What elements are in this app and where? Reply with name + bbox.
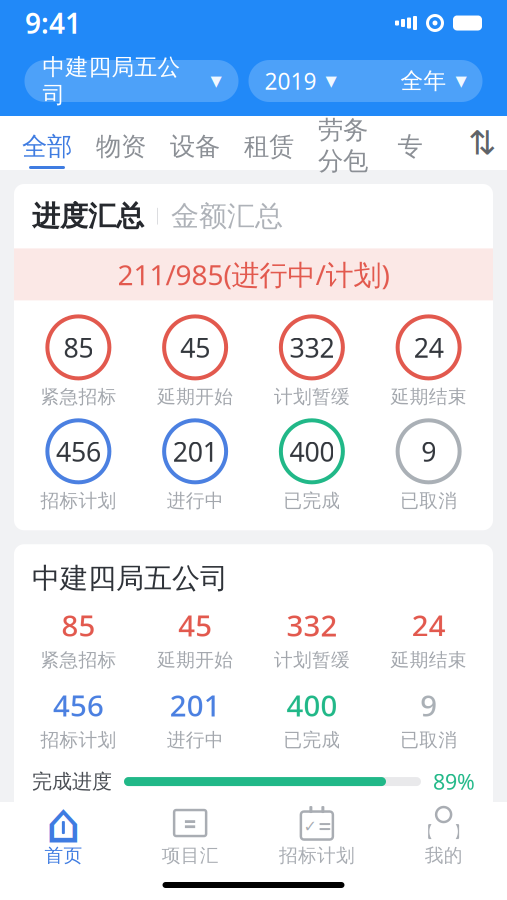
staticText: 201 bbox=[170, 685, 221, 724]
staticText: 9 bbox=[421, 434, 436, 469]
staticText: 24 bbox=[412, 606, 446, 645]
staticText: 85 bbox=[63, 330, 93, 365]
staticText: 物资 bbox=[96, 131, 146, 162]
button[interactable]: 进度汇总 bbox=[32, 184, 144, 248]
staticText: 456 bbox=[56, 434, 101, 469]
staticText: 400 bbox=[289, 434, 334, 469]
staticText: ⇅ bbox=[468, 124, 496, 162]
staticText: 我的 bbox=[425, 844, 463, 867]
staticText: ▼ bbox=[210, 73, 221, 89]
button[interactable]: ✓ bbox=[253, 802, 380, 870]
staticText: 全部 bbox=[22, 131, 72, 162]
button[interactable]: 金额汇总 bbox=[171, 184, 283, 248]
staticText: 已完成 bbox=[283, 728, 340, 751]
staticText: 进行中 bbox=[167, 728, 224, 751]
staticText: 已完成 bbox=[283, 489, 340, 512]
button[interactable]: 中建四局五公司 bbox=[14, 544, 493, 812]
button[interactable]: 我的 bbox=[380, 802, 507, 870]
staticText: 紧急招标 bbox=[40, 649, 116, 671]
button[interactable]: 2019 bbox=[248, 60, 352, 102]
staticText: 完成进度 bbox=[32, 769, 112, 794]
button[interactable]: ⌂ bbox=[0, 802, 127, 870]
staticText: 劳务分包 bbox=[318, 114, 368, 177]
staticText: 已取消 bbox=[400, 728, 457, 751]
staticText: 金额汇总 bbox=[171, 199, 283, 233]
staticText: 招标计划 bbox=[279, 844, 355, 867]
staticText: 24 bbox=[414, 330, 444, 365]
button[interactable]: 〓 bbox=[127, 802, 254, 870]
staticText: 计划暂缓 bbox=[274, 385, 350, 408]
staticText: 456 bbox=[53, 685, 104, 724]
staticText: ▼ bbox=[325, 73, 336, 89]
staticText: 〓 bbox=[183, 815, 198, 833]
staticText: ✓ bbox=[303, 817, 316, 836]
staticText: 已取消 bbox=[400, 489, 457, 512]
staticText: 201 bbox=[173, 434, 218, 469]
staticText: 设备 bbox=[170, 131, 220, 162]
staticText: 332 bbox=[286, 606, 337, 645]
staticText: 332 bbox=[289, 330, 334, 365]
button[interactable]: 劳务分包 bbox=[306, 117, 380, 169]
staticText: 进度汇总 bbox=[32, 199, 144, 233]
staticText: ⌂ bbox=[45, 791, 81, 855]
staticText: 2019 bbox=[264, 66, 316, 96]
staticText: 45 bbox=[178, 606, 212, 645]
staticText: 211/985(进行中/计划) bbox=[117, 256, 389, 293]
button[interactable]: 租赁 bbox=[232, 117, 306, 169]
staticText: 首页 bbox=[44, 844, 82, 867]
staticText: 延期结束 bbox=[391, 649, 467, 671]
staticText: 中建四局五公司 bbox=[32, 561, 228, 596]
staticText: ▼ bbox=[455, 73, 466, 89]
staticText: 400 bbox=[286, 685, 337, 724]
button[interactable]: 物资 bbox=[84, 117, 158, 169]
button[interactable]: 全部 bbox=[10, 117, 84, 169]
staticText: 进行中 bbox=[167, 489, 224, 512]
staticText: 专 bbox=[397, 131, 422, 162]
staticText: 9:41 bbox=[25, 4, 81, 42]
staticText: 计划暂缓 bbox=[274, 649, 350, 671]
staticText: 85 bbox=[61, 606, 95, 645]
staticText: 9 bbox=[420, 685, 437, 724]
button[interactable]: 专 bbox=[380, 117, 440, 169]
staticText: 延期开始 bbox=[157, 385, 233, 408]
staticText: 项目汇 bbox=[162, 844, 219, 867]
staticText: 租赁 bbox=[244, 131, 294, 162]
staticText: 招标计划 bbox=[40, 489, 116, 512]
button[interactable]: 排序 bbox=[459, 117, 505, 169]
staticText: 89% bbox=[433, 767, 475, 796]
button[interactable]: 中建四局五公司 bbox=[24, 60, 238, 102]
staticText: 紧急招标 bbox=[40, 385, 116, 408]
staticText: 45 bbox=[180, 330, 210, 365]
button[interactable]: 全年 bbox=[384, 60, 482, 102]
staticText: 全年 bbox=[400, 67, 446, 95]
button[interactable]: 设备 bbox=[158, 117, 232, 169]
staticText: 延期结束 bbox=[391, 385, 467, 408]
staticText: 中建四局五公司 bbox=[42, 53, 180, 109]
staticText: 招标计划 bbox=[40, 728, 116, 751]
staticText: 延期开始 bbox=[157, 649, 233, 671]
